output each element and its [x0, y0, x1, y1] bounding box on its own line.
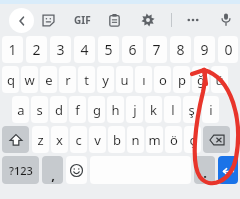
staticText: d — [55, 101, 63, 119]
staticText: 3 — [56, 40, 65, 59]
button[interactable]: d — [50, 96, 67, 123]
button[interactable]: Backspace — [203, 126, 230, 153]
staticText: b — [113, 131, 121, 149]
button[interactable]: k — [145, 96, 162, 123]
button[interactable]: q — [2, 66, 19, 93]
button[interactable]: s — [31, 96, 48, 123]
staticText: 2 — [32, 40, 41, 59]
staticText: m — [148, 131, 161, 149]
staticText: i — [209, 101, 213, 119]
button[interactable]: e — [40, 66, 57, 93]
button[interactable]: p — [173, 66, 190, 93]
button[interactable]: More options — [183, 10, 203, 30]
staticText: ?123 — [9, 163, 33, 178]
button[interactable]: Clipboard — [104, 10, 124, 30]
staticText: GIF — [74, 13, 91, 27]
staticText: l — [171, 101, 175, 119]
staticText: ç — [189, 131, 196, 149]
button[interactable]: z — [32, 126, 49, 153]
button[interactable]: v — [89, 126, 106, 153]
button[interactable]: ğ — [192, 66, 209, 93]
button[interactable]: 1 — [2, 36, 23, 63]
button[interactable]: t — [78, 66, 95, 93]
button[interactable]: 2 — [26, 36, 47, 63]
button[interactable]: h — [107, 96, 124, 123]
button[interactable]: Settings — [138, 10, 158, 30]
button[interactable]: n — [127, 126, 144, 153]
button[interactable]: Enter — [218, 156, 238, 184]
staticText: 7 — [152, 40, 161, 59]
staticText: ö — [170, 131, 178, 149]
button[interactable]: ü — [211, 66, 228, 93]
staticText: 8 — [176, 40, 185, 59]
button[interactable]: 0 — [218, 36, 238, 63]
staticText: v — [94, 131, 101, 149]
staticText: ğ — [197, 71, 205, 89]
button[interactable]: . — [194, 156, 215, 184]
button[interactable]: i — [202, 96, 219, 123]
button[interactable]: 6 — [122, 36, 143, 63]
button[interactable]: 8 — [170, 36, 191, 63]
button[interactable]: 3 — [50, 36, 71, 63]
button[interactable]: j — [126, 96, 143, 123]
staticText: s — [36, 101, 43, 119]
button[interactable]: ç — [184, 126, 201, 153]
button[interactable]: 7 — [146, 36, 167, 63]
staticText: ü — [215, 71, 224, 89]
button[interactable]: ö — [165, 126, 182, 153]
staticText: h — [111, 101, 120, 119]
button[interactable]: a — [12, 96, 29, 123]
staticText: c — [75, 131, 82, 149]
button[interactable]: l — [164, 96, 181, 123]
button[interactable]: ş — [183, 96, 200, 123]
button[interactable]: , — [42, 156, 63, 184]
staticText: n — [131, 131, 140, 149]
button[interactable]: Voice input — [216, 9, 236, 29]
button[interactable]: 9 — [194, 36, 215, 63]
staticText: t — [84, 71, 89, 89]
button[interactable]: GIF — [70, 10, 94, 30]
button[interactable]: ?123 — [2, 156, 39, 184]
button[interactable]: r — [59, 66, 76, 93]
staticText: 4 — [80, 40, 89, 59]
button[interactable]: g — [88, 96, 105, 123]
button[interactable]: c — [70, 126, 87, 153]
button[interactable]: 4 — [74, 36, 95, 63]
staticText: 9 — [200, 40, 209, 59]
staticText: . — [203, 164, 207, 182]
staticText: 6 — [128, 40, 137, 59]
staticText: j — [133, 101, 137, 119]
button[interactable]: m — [146, 126, 163, 153]
button[interactable]: Stickers — [38, 10, 58, 30]
staticText: u — [120, 71, 129, 89]
staticText: e — [45, 71, 53, 89]
button[interactable]: Emoji — [66, 156, 87, 184]
staticText: f — [75, 101, 80, 119]
button[interactable]: ı — [135, 66, 152, 93]
staticText: 1 — [8, 40, 17, 59]
staticText: o — [159, 71, 167, 89]
staticText: r — [65, 71, 71, 89]
button[interactable]: y — [97, 66, 114, 93]
staticText: y — [102, 71, 109, 89]
button[interactable]: Back — [9, 8, 34, 33]
staticText: 0 — [224, 40, 233, 59]
staticText: ş — [188, 101, 195, 119]
staticText: x — [56, 131, 63, 149]
button[interactable]: u — [116, 66, 133, 93]
staticText: w — [24, 71, 35, 89]
button[interactable]: x — [51, 126, 68, 153]
staticText: p — [178, 71, 186, 89]
button[interactable]: w — [21, 66, 38, 93]
button[interactable]: Shift — [2, 126, 29, 153]
staticText: 5 — [104, 40, 113, 59]
staticText: k — [150, 101, 157, 119]
staticText: q — [7, 71, 15, 89]
button[interactable]: b — [108, 126, 125, 153]
button[interactable]: 5 — [98, 36, 119, 63]
button[interactable]: o — [154, 66, 171, 93]
button[interactable]: f — [69, 96, 86, 123]
staticText: a — [17, 101, 25, 119]
staticText: , — [51, 166, 55, 184]
